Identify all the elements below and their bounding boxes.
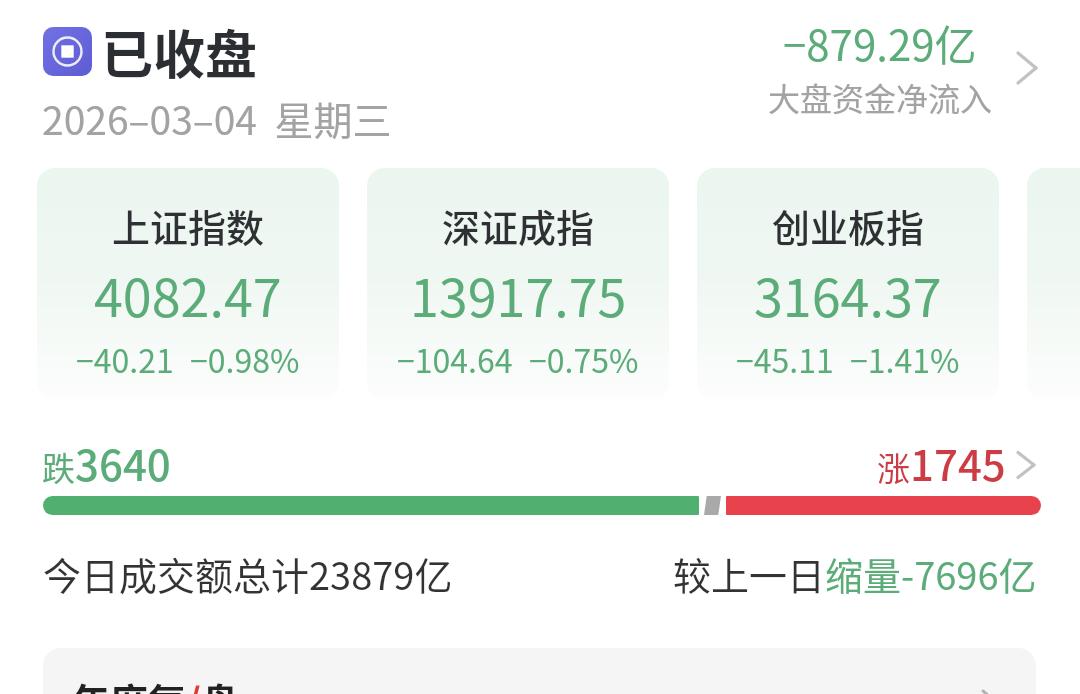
button[interactable]: 科创50 [1027, 168, 1080, 400]
staticText: −0.98% [190, 336, 300, 382]
button[interactable]: 跌3640 [42, 432, 1041, 493]
staticText: −0.75% [529, 336, 639, 382]
staticText: −1.41% [850, 336, 960, 382]
staticText: −45.11 [736, 336, 834, 382]
staticText: 较上一日缩量-7696亿 [673, 546, 1037, 601]
button[interactable]: 已收盘 [43, 14, 258, 89]
button[interactable]: 上证指数 [37, 168, 339, 400]
staticText: 跌3640 [42, 432, 171, 493]
staticText: 13917.75 [410, 257, 627, 332]
staticText: 2026–03–04 星期三 [42, 90, 392, 146]
button[interactable]: 创业板指 [697, 168, 999, 400]
button[interactable]: −879.29亿 [753, 12, 1050, 120]
other: 大盘资金详情 [1007, 48, 1047, 88]
button[interactable]: 深证成指 [367, 168, 669, 400]
staticText: −40.21 [76, 336, 174, 382]
staticText: 今日成交额总计23879亿 [43, 546, 453, 601]
staticText: 3164.37 [754, 257, 942, 332]
staticText: 年度复/盘 [72, 672, 239, 694]
staticText: 上证指数 [112, 198, 265, 253]
staticText: 创业板指 [772, 198, 925, 253]
staticText: 大盘资金净流入 [768, 74, 993, 120]
staticText: 深证成指 [442, 198, 595, 253]
other: 涨跌家数详情 [1011, 450, 1041, 480]
button[interactable]: 年度复/盘 [43, 648, 1036, 694]
staticText: −879.29亿 [783, 12, 977, 73]
staticText: 涨1745 [877, 432, 1006, 493]
staticText: −104.64 [397, 336, 513, 382]
staticText: 已收盘 [101, 14, 258, 89]
staticText: 4082.47 [94, 257, 282, 332]
other: 查看年度复盘 [975, 688, 1005, 694]
